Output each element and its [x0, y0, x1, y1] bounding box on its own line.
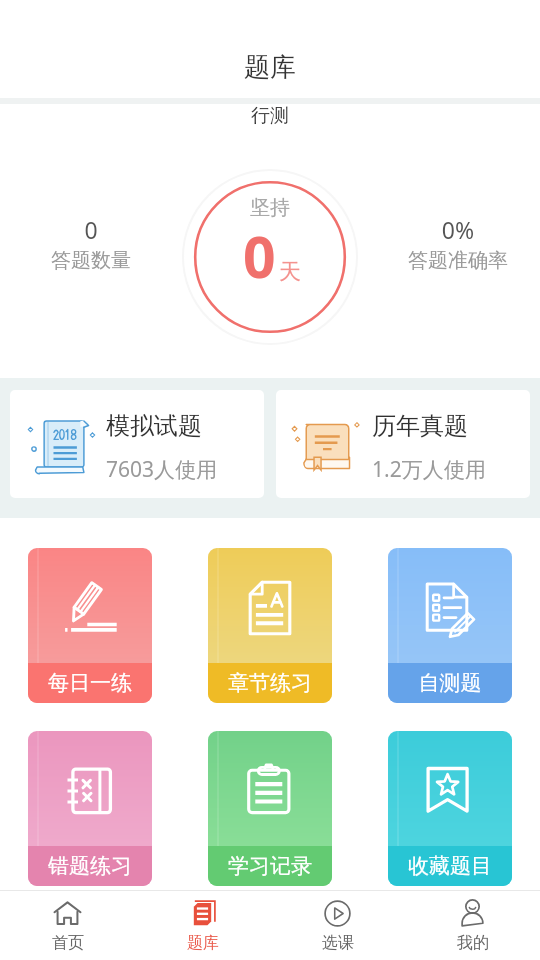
staticText: 模拟试题: [106, 411, 202, 441]
staticText: 天: [279, 258, 301, 286]
button[interactable]: 收藏题目: [388, 731, 512, 886]
button[interactable]: 错题练习: [28, 731, 152, 886]
staticText: 0: [31, 214, 151, 245]
staticText: 首页: [52, 933, 84, 953]
staticText: 选课: [322, 933, 354, 953]
button[interactable]: 选课: [270, 890, 405, 953]
staticText: 章节练习: [208, 670, 332, 696]
staticText: 答题准确率: [398, 248, 518, 273]
staticText: 收藏题目: [388, 853, 512, 879]
staticText: 题库: [0, 51, 540, 84]
staticText: 我的: [457, 933, 489, 953]
staticText: 0%: [398, 214, 518, 245]
staticText: 题库: [187, 933, 219, 953]
staticText: 答题数量: [31, 248, 151, 273]
staticText: 坚持: [210, 195, 330, 220]
staticText: 行测: [0, 104, 540, 128]
staticText: 1.2万人使用: [372, 455, 486, 484]
button[interactable]: 模拟试题: [10, 390, 264, 498]
button[interactable]: 题库: [135, 890, 270, 953]
button[interactable]: 历年真题: [276, 390, 530, 498]
staticText: 自测题: [388, 670, 512, 696]
button[interactable]: 学习记录: [208, 731, 332, 886]
staticText: 学习记录: [208, 853, 332, 879]
button[interactable]: 每日一练: [28, 548, 152, 703]
button[interactable]: 自测题: [388, 548, 512, 703]
staticText: 0: [243, 217, 276, 295]
button[interactable]: 我的: [405, 890, 540, 953]
staticText: 错题练习: [28, 853, 152, 879]
staticText: 每日一练: [28, 670, 152, 696]
staticText: 7603人使用: [106, 455, 218, 484]
button[interactable]: 章节练习: [208, 548, 332, 703]
staticText: 历年真题: [372, 411, 468, 441]
button[interactable]: 首页: [0, 890, 135, 953]
